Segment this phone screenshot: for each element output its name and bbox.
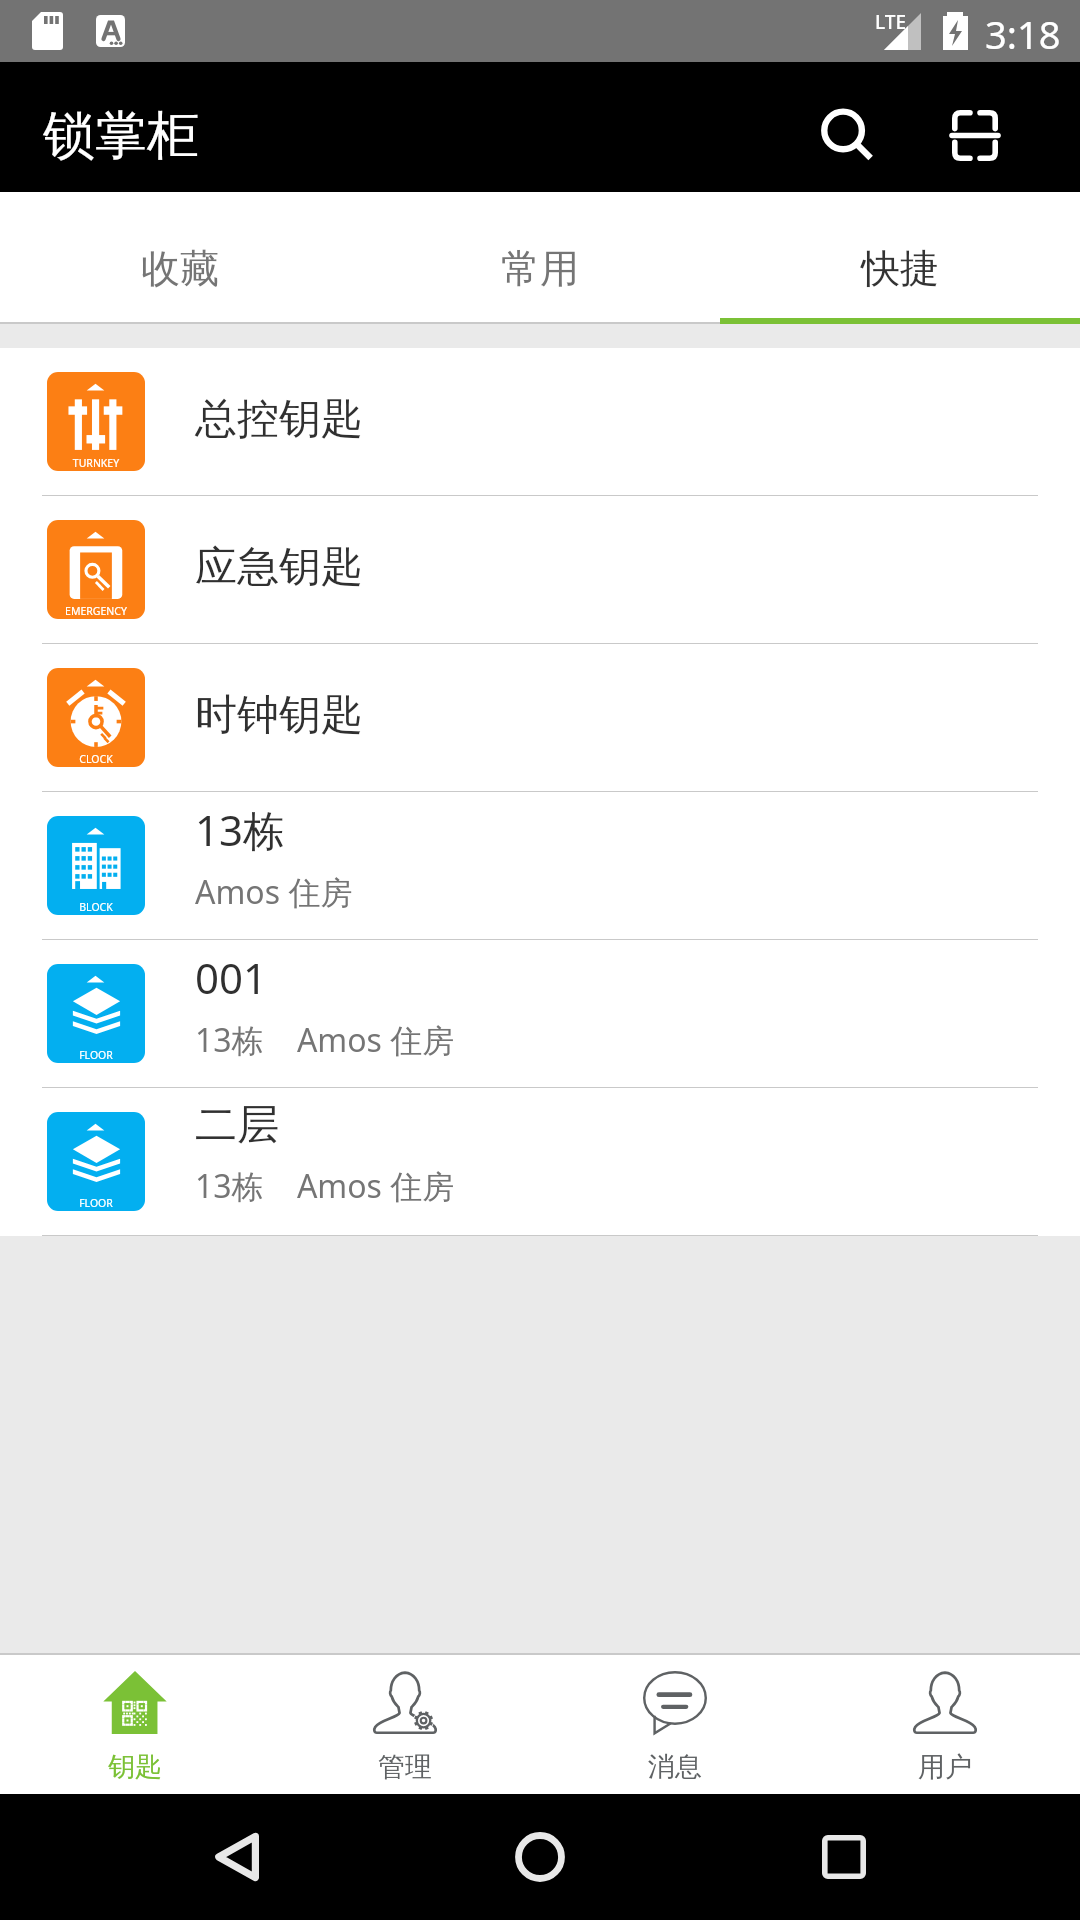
button[interactable]: TURNKEY <box>0 348 1080 495</box>
button[interactable]: CLOCK <box>0 644 1080 791</box>
staticText: 收藏 <box>141 244 219 293</box>
staticText: EMERGENCY <box>47 604 145 618</box>
staticText: 常用 <box>501 244 579 293</box>
staticText: FLOOR <box>47 1048 145 1062</box>
button[interactable]: 钥匙 <box>0 1653 270 1794</box>
button[interactable]: Search <box>788 76 918 206</box>
staticText: 钥匙 <box>108 1750 162 1784</box>
staticText: 快捷 <box>861 244 939 293</box>
staticText: 管理 <box>378 1750 432 1784</box>
staticText: 13栋 Amos 住房 <box>195 1018 455 1062</box>
staticText: 用户 <box>918 1750 972 1784</box>
staticText: Amos 住房 <box>195 870 353 914</box>
button[interactable]: Scan QR code <box>910 70 1040 200</box>
button[interactable]: 快捷 <box>720 192 1080 324</box>
staticText: FLOOR <box>47 1196 145 1210</box>
button[interactable]: 用户 <box>810 1653 1080 1794</box>
button[interactable]: Back <box>176 1797 296 1917</box>
staticText: 二层 <box>195 1099 279 1152</box>
staticText: 消息 <box>648 1750 702 1784</box>
staticText: BLOCK <box>47 900 145 914</box>
staticText: 3:18 <box>985 8 1061 60</box>
staticText: 总控钥匙 <box>195 393 363 446</box>
staticText: 应急钥匙 <box>195 541 363 594</box>
button[interactable]: 收藏 <box>0 192 360 324</box>
staticText: LTE <box>875 9 907 35</box>
staticText: TURNKEY <box>47 456 145 470</box>
staticText: 13栋 Amos 住房 <box>195 1164 455 1208</box>
staticText: 001 <box>195 949 268 1006</box>
button[interactable]: EMERGENCY <box>0 496 1080 643</box>
staticText: 时钟钥匙 <box>195 689 363 742</box>
button[interactable]: 管理 <box>270 1653 540 1794</box>
button[interactable]: Home <box>480 1797 600 1917</box>
button[interactable]: Recent apps <box>784 1797 904 1917</box>
button[interactable]: BLOCK <box>0 792 1080 939</box>
staticText: 锁掌柜 <box>43 103 199 169</box>
button[interactable]: 常用 <box>360 192 720 324</box>
staticText: 13栋 <box>195 801 286 858</box>
button[interactable]: FLOOR <box>0 1088 1080 1235</box>
button[interactable]: FLOOR <box>0 940 1080 1087</box>
staticText: CLOCK <box>47 752 145 766</box>
button[interactable]: 消息 <box>540 1653 810 1794</box>
